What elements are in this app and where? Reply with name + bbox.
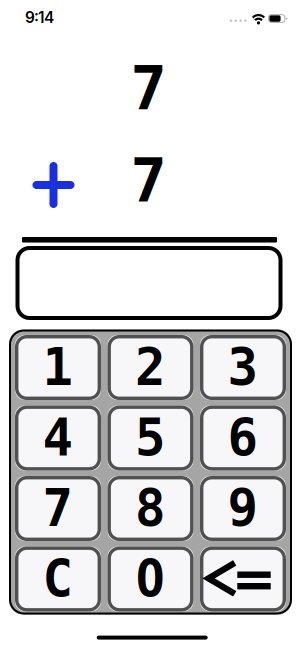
staticText: 6 [227, 408, 258, 467]
staticText: 2 [135, 338, 166, 397]
button[interactable]: 7 [15, 476, 101, 541]
button[interactable]: 2 [107, 335, 193, 400]
staticText: 9 [227, 479, 258, 538]
button[interactable]: 3 [200, 335, 286, 400]
button[interactable]: 0 [107, 546, 193, 611]
button[interactable]: 4 [15, 405, 101, 470]
staticText: 5 [135, 408, 166, 467]
staticText: 3 [227, 338, 258, 397]
staticText: C [42, 549, 73, 608]
staticText: 7 [130, 54, 166, 124]
button[interactable]: 5 [107, 405, 193, 470]
staticText: 1 [42, 338, 73, 397]
button[interactable]: 1 [15, 335, 101, 400]
button[interactable]: C [15, 546, 101, 611]
staticText: 7 [42, 479, 73, 538]
staticText: 4 [42, 408, 73, 467]
button[interactable]: 6 [200, 405, 286, 470]
button[interactable]: Backspace [200, 546, 286, 611]
button[interactable]: 9 [200, 476, 286, 541]
staticText: 7 [130, 146, 166, 216]
button[interactable]: 8 [107, 476, 193, 541]
staticText: 9:14 [25, 8, 54, 27]
staticText: 0 [135, 549, 166, 608]
staticText: 8 [135, 479, 166, 538]
